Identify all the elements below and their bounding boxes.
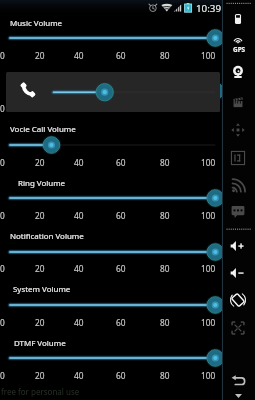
staticText: 0 bbox=[0, 50, 5, 61]
staticText: 100 bbox=[201, 263, 216, 274]
staticText: 60 bbox=[116, 50, 126, 61]
staticText: 40 bbox=[74, 317, 84, 328]
staticText: Ring Volume bbox=[18, 178, 66, 189]
button[interactable]: Camera bbox=[230, 64, 246, 80]
button[interactable]: GPS bbox=[230, 34, 246, 50]
staticText: System Volume bbox=[13, 284, 71, 295]
staticText: 40 bbox=[74, 370, 84, 381]
staticText: 40 bbox=[74, 103, 84, 114]
button[interactable]: DTMF Volume bbox=[0, 348, 222, 368]
button[interactable]: Notification Volume bbox=[0, 242, 222, 262]
staticText: 20 bbox=[35, 210, 45, 221]
staticText: 0 bbox=[0, 370, 5, 381]
button[interactable]: Move bbox=[230, 122, 246, 138]
button[interactable]: Alarm Volume bbox=[0, 81, 222, 101]
button[interactable]: Volume down bbox=[230, 265, 246, 281]
staticText: GPS bbox=[233, 45, 246, 54]
staticText: Vocie Call Volume bbox=[10, 124, 76, 135]
staticText: 60 bbox=[116, 157, 126, 168]
staticText: 10:39 bbox=[196, 2, 222, 15]
staticText: 40 bbox=[74, 157, 84, 168]
staticText: 20 bbox=[35, 157, 45, 168]
staticText: 0 bbox=[0, 157, 5, 168]
button[interactable]: System Volume bbox=[0, 295, 222, 315]
staticText: 20 bbox=[35, 370, 45, 381]
staticText: 60 bbox=[116, 370, 126, 381]
button[interactable]: In-call volume bbox=[6, 72, 220, 112]
staticText: 80 bbox=[160, 370, 170, 381]
staticText: 0 bbox=[0, 263, 5, 274]
staticText: 80 bbox=[160, 210, 170, 221]
button[interactable]: Back bbox=[230, 373, 246, 389]
button[interactable]: Music Volume bbox=[0, 28, 222, 48]
staticText: 60 bbox=[116, 210, 126, 221]
staticText: 80 bbox=[160, 50, 170, 61]
staticText: 60 bbox=[116, 103, 126, 114]
button[interactable]: Power bbox=[230, 11, 246, 27]
staticText: 20 bbox=[35, 263, 45, 274]
button[interactable]: Network bbox=[230, 177, 246, 193]
staticText: 0 bbox=[0, 103, 5, 114]
staticText: 100 bbox=[201, 210, 216, 221]
staticText: 80 bbox=[160, 103, 170, 114]
staticText: Notification Volume bbox=[10, 231, 84, 242]
staticText: 40 bbox=[74, 210, 84, 221]
staticText: 40 bbox=[74, 50, 84, 61]
staticText: 100 bbox=[201, 370, 216, 381]
staticText: 20 bbox=[35, 317, 45, 328]
staticText: DTMF Volume bbox=[14, 338, 66, 349]
staticText: Alarm Volume bbox=[10, 71, 63, 82]
button[interactable]: Volume up bbox=[230, 238, 246, 254]
staticText: 80 bbox=[160, 157, 170, 168]
staticText: 80 bbox=[160, 263, 170, 274]
staticText: 0 bbox=[0, 317, 5, 328]
staticText: 20 bbox=[35, 50, 45, 61]
staticText: 20 bbox=[35, 103, 45, 114]
staticText: 40 bbox=[74, 263, 84, 274]
button[interactable]: Rotate bbox=[230, 292, 246, 308]
staticText: 0 bbox=[0, 210, 5, 221]
staticText: 100 bbox=[201, 103, 216, 114]
button[interactable]: Vocie Call Volume bbox=[0, 135, 222, 155]
staticText: free for personal use bbox=[1, 386, 80, 397]
button[interactable]: Ring Volume bbox=[0, 188, 222, 208]
staticText: 100 bbox=[201, 157, 216, 168]
staticText: 100 bbox=[201, 50, 216, 61]
staticText: Music Volume bbox=[10, 18, 63, 29]
button[interactable]: Fullscreen bbox=[230, 320, 246, 336]
button[interactable]: Caller ID bbox=[230, 150, 246, 166]
button[interactable]: More bbox=[235, 394, 242, 398]
button[interactable]: Messages bbox=[230, 204, 246, 220]
button[interactable]: Screen record bbox=[230, 94, 246, 110]
staticText: 60 bbox=[116, 317, 126, 328]
staticText: 80 bbox=[160, 317, 170, 328]
staticText: 100 bbox=[201, 317, 216, 328]
staticText: 60 bbox=[116, 263, 126, 274]
